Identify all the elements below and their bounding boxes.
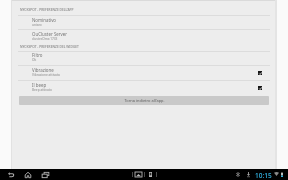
staticText: Torna indietro all'app. [124,98,165,103]
staticText: cluster.Oms:1733 [32,37,58,41]
staticText: Ok [32,58,37,62]
button[interactable]: Recent apps [40,169,51,180]
staticText: Beep attivato [32,88,52,92]
staticText: Vibrazione attivata [32,73,60,77]
staticText: OuCluster Server [32,31,68,37]
staticText: unisex [32,23,42,27]
button[interactable]: Nominativo [12,15,275,30]
staticText: NYCKSPOT - PREFERENZE DEL WIDGET [20,45,79,49]
button[interactable]: Filtro [12,51,275,65]
button[interactable]: OuCluster Server [12,29,275,44]
button[interactable]: Back [5,169,16,180]
button[interactable]: Vibrazione [12,65,275,80]
staticText: 10:15 [255,171,272,180]
staticText: Filtro [32,52,43,58]
button[interactable]: Home [22,169,33,180]
staticText: Nominativo [32,17,57,23]
staticText: Il beep [32,82,47,88]
staticText: NYCKSPOT - PREFERENZE DELL'APP [20,8,74,12]
button[interactable]: Il beep [12,80,275,95]
button[interactable]: Torna indietro all'app. [19,96,269,105]
staticText: Vibrazione [32,67,54,73]
